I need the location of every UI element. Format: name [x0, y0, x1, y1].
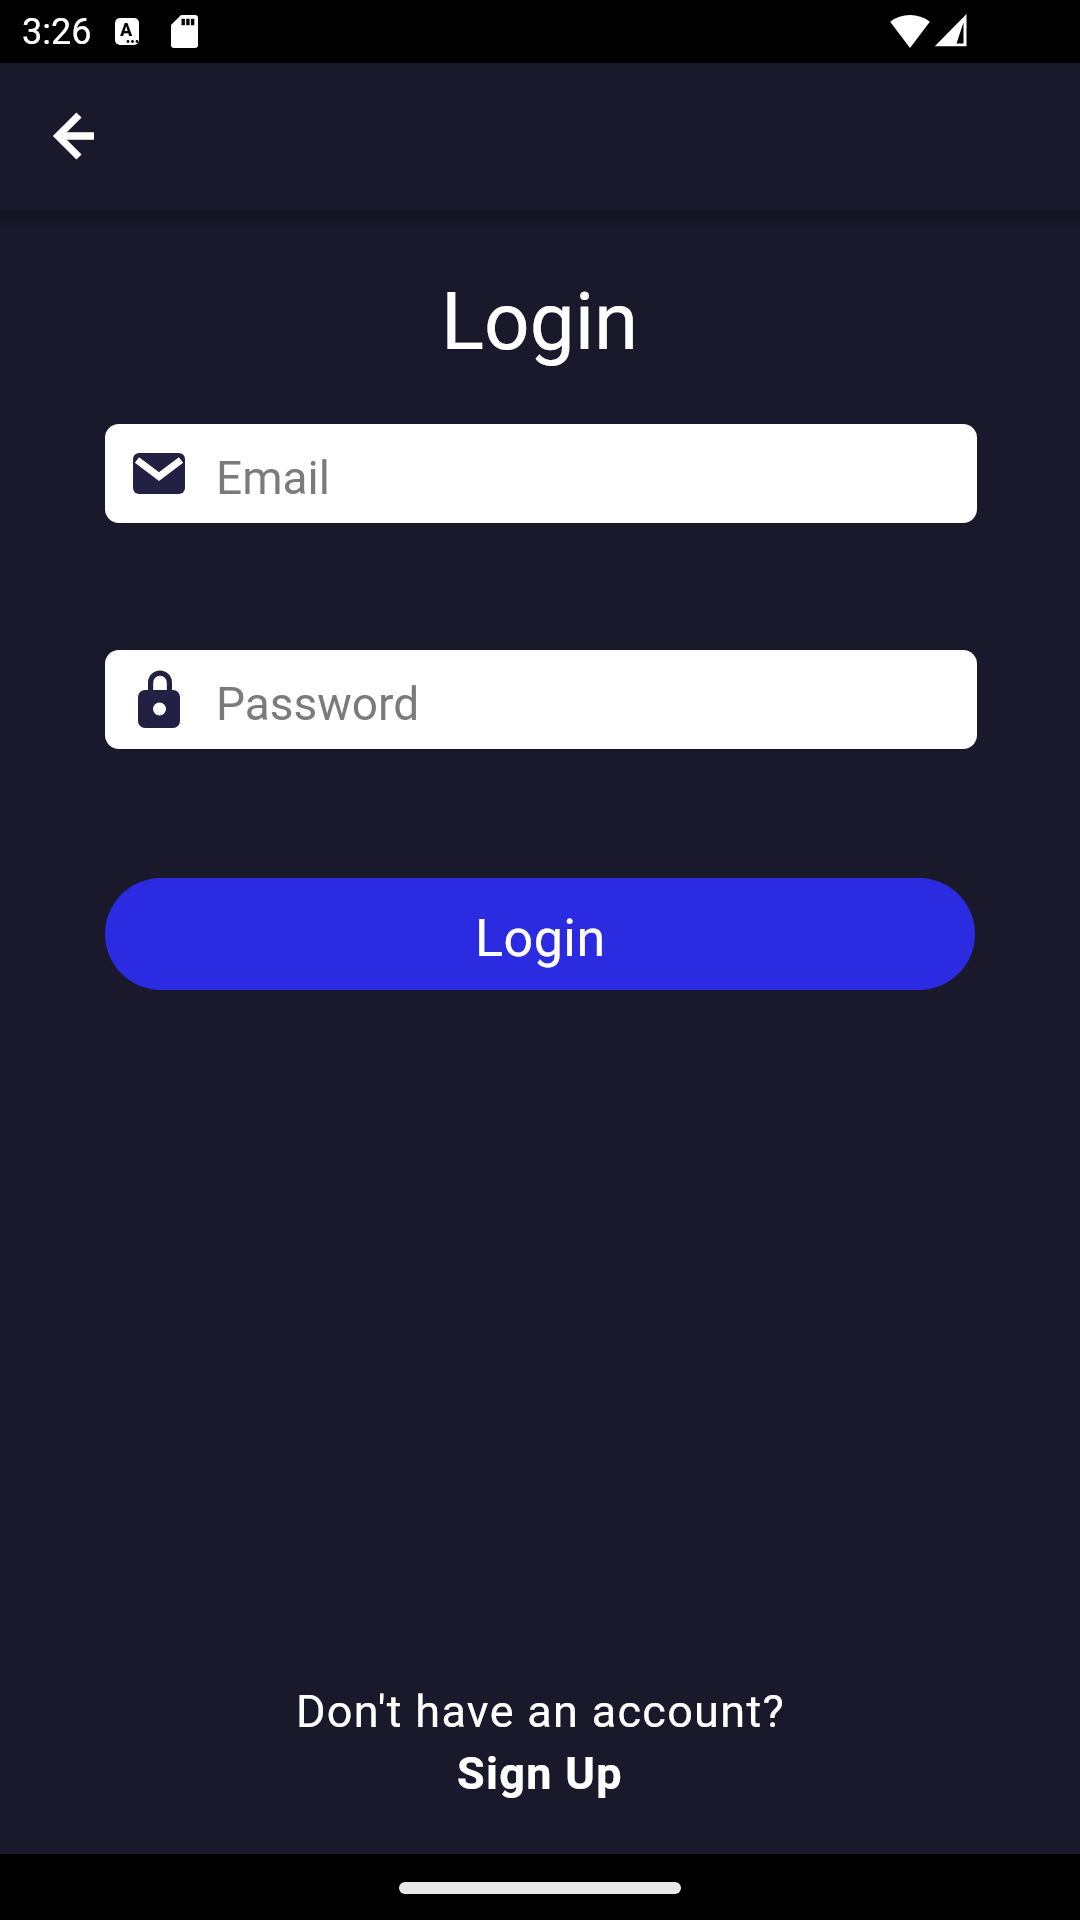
staticText: A [120, 19, 133, 40]
staticText: Sign Up [457, 1747, 623, 1800]
staticText: Login [441, 275, 639, 366]
staticText: Email [216, 451, 330, 505]
staticText: Password [216, 677, 420, 731]
staticText: Login [475, 908, 606, 969]
staticText: Don't have an account? [296, 1685, 785, 1738]
staticText: 3:26 [22, 11, 92, 53]
